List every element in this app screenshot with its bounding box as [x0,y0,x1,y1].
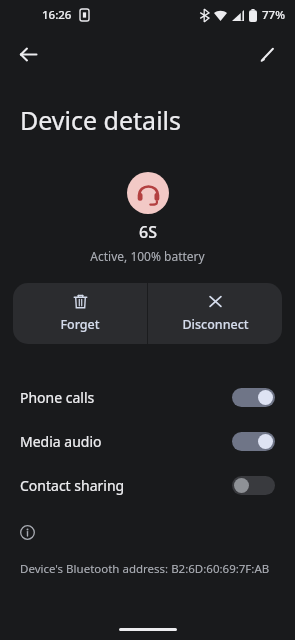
staticText: Disconnect [182,316,249,333]
button[interactable]: Contact sharing [0,463,295,507]
staticText: Forget [60,316,100,333]
button[interactable]: Disconnect [148,283,282,344]
staticText: 77% [262,7,285,23]
staticText: Device details [20,103,182,137]
staticText: Active, 100% battery [90,248,205,264]
button[interactable]: Rename device [247,34,287,74]
staticText: Device's Bluetooth address: B2:6D:60:69:… [20,561,270,577]
button[interactable]: Phone calls [0,375,295,419]
staticText: 6S [139,221,157,243]
button[interactable]: Back [8,34,48,74]
button[interactable]: Media audio [0,419,295,463]
staticText: Phone calls [20,388,232,407]
staticText: Contact sharing [20,476,232,495]
staticText: Media audio [20,432,232,451]
staticText: 16:26 [42,7,72,23]
button[interactable]: Forget [13,283,147,344]
